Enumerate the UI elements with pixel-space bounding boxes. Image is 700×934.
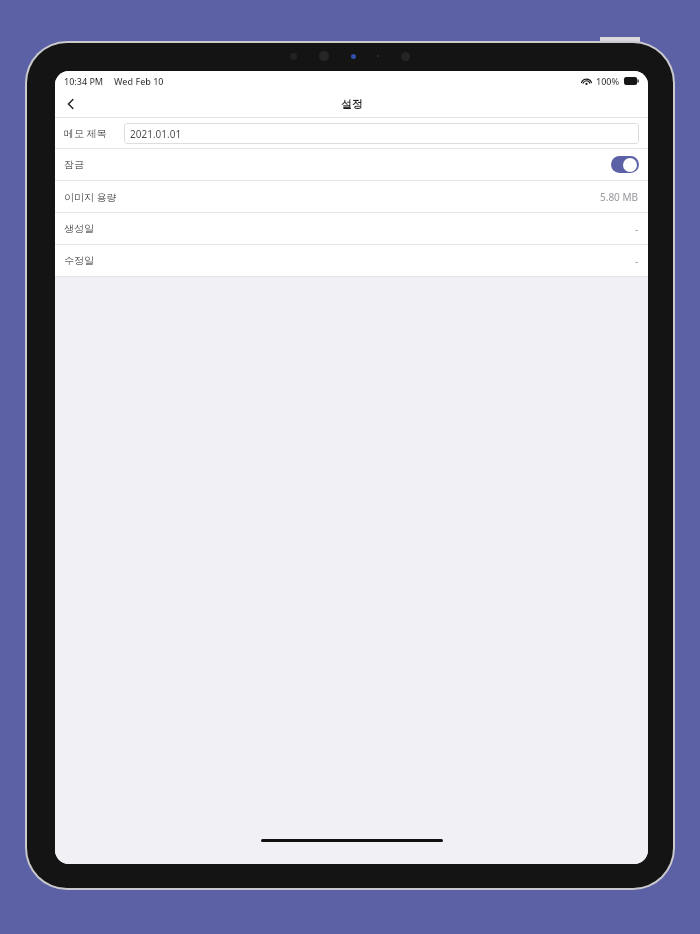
- button[interactable]: Back: [55, 90, 87, 117]
- staticText: 잠금: [64, 158, 84, 171]
- staticText: 100%: [596, 75, 620, 87]
- staticText: 5.80 MB: [600, 190, 639, 204]
- staticText: 이미지 용량: [64, 190, 117, 204]
- staticText: 설정: [341, 97, 363, 111]
- button[interactable]: Lock toggle, on: [611, 156, 639, 173]
- staticText: 10:34 PM: [64, 75, 104, 87]
- button[interactable]: 수정일: [55, 245, 648, 276]
- button[interactable]: 이미지 용량: [55, 181, 648, 212]
- staticText: 2021.01.01: [130, 127, 182, 141]
- staticText: 메모 제목: [64, 126, 107, 140]
- button[interactable]: 잠금: [55, 149, 648, 180]
- staticText: 수정일: [64, 254, 94, 267]
- button[interactable]: 생성일: [55, 213, 648, 244]
- button[interactable]: 메모 제목: [55, 118, 648, 148]
- staticText: Wed Feb 10: [114, 75, 164, 87]
- staticText: -: [635, 222, 639, 236]
- staticText: -: [635, 254, 639, 268]
- staticText: 생성일: [64, 222, 94, 235]
